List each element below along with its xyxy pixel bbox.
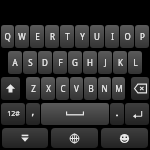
button[interactable]: V [70, 77, 83, 100]
button[interactable]: K [113, 51, 127, 74]
staticText: X [46, 83, 51, 94]
staticText: L [133, 57, 138, 68]
button[interactable]: O [120, 25, 134, 48]
staticText: E [35, 31, 40, 42]
button[interactable]: Z [26, 77, 40, 100]
button[interactable]: Emoji [101, 128, 148, 148]
staticText: A [12, 57, 18, 68]
button[interactable]: Space [41, 103, 109, 125]
staticText: Z [31, 83, 36, 94]
button[interactable]: 12# [1, 103, 25, 125]
button[interactable]: D [38, 51, 52, 74]
button[interactable]: Shift [1, 77, 20, 100]
button[interactable]: G [68, 51, 82, 74]
staticText: K [118, 57, 123, 68]
staticText: H [87, 57, 93, 68]
button[interactable]: Period [110, 103, 124, 125]
staticText: M [115, 83, 123, 94]
staticText: Y [80, 31, 85, 42]
staticText: T [65, 31, 70, 42]
staticText: C [60, 83, 66, 94]
staticText: D [42, 57, 48, 68]
staticText: N [101, 83, 108, 94]
button[interactable]: N [98, 77, 111, 100]
staticText: I [111, 31, 114, 42]
button[interactable]: W [15, 25, 29, 48]
staticText: B [88, 83, 94, 94]
staticText: P [140, 31, 145, 42]
button[interactable]: E [30, 25, 44, 48]
button[interactable]: Y [75, 25, 89, 48]
button[interactable]: F [53, 51, 67, 74]
staticText: S [28, 57, 33, 68]
button[interactable]: U [90, 25, 104, 48]
button[interactable]: Backspace [131, 77, 149, 100]
button[interactable]: L [128, 51, 142, 74]
staticText: Q [4, 31, 11, 42]
button[interactable]: J [98, 51, 112, 74]
staticText: J [104, 57, 107, 68]
button[interactable]: Hide keyboard [2, 128, 48, 148]
staticText: U [94, 31, 100, 42]
button[interactable]: M [112, 77, 125, 100]
button[interactable]: X [41, 77, 55, 100]
button[interactable]: C [56, 77, 69, 100]
button[interactable]: R [45, 25, 59, 48]
staticText: G [72, 57, 78, 68]
staticText: F [58, 57, 63, 68]
button[interactable]: Q [1, 25, 14, 48]
button[interactable]: I [105, 25, 119, 48]
button[interactable]: P [135, 25, 149, 48]
staticText: W [18, 31, 26, 42]
button[interactable]: Change language [51, 128, 98, 148]
staticText: 12# [7, 109, 20, 119]
staticText: V [74, 83, 79, 94]
staticText: R [50, 31, 55, 42]
button[interactable]: H [83, 51, 97, 74]
button[interactable]: T [60, 25, 74, 48]
staticText: O [124, 31, 131, 42]
button[interactable]: S [23, 51, 37, 74]
button[interactable]: A [8, 51, 22, 74]
button[interactable]: Enter [125, 103, 149, 125]
button[interactable]: Comma [26, 103, 40, 125]
button[interactable]: B [84, 77, 97, 100]
